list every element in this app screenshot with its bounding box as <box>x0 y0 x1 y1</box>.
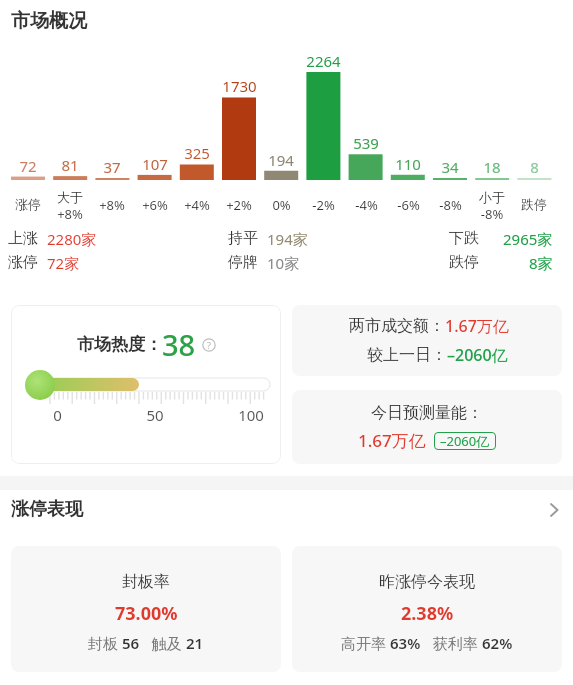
staticText: 下跌 <box>449 229 479 248</box>
staticText: 高开率 <box>341 633 390 653</box>
staticText: 1.67万亿 <box>358 429 426 452</box>
staticText: 2280家 <box>47 229 97 249</box>
staticText: 73.00% <box>115 601 178 626</box>
staticText: 72 <box>19 156 37 176</box>
staticText: 较上一日： <box>367 345 447 365</box>
staticText: 63% <box>390 633 421 653</box>
staticText: 封板 <box>88 633 122 653</box>
button[interactable]: 今日预测量能： <box>292 390 562 464</box>
staticText: 2264 <box>306 51 341 71</box>
staticText: +8% <box>99 196 125 214</box>
staticText: 1730 <box>222 76 257 96</box>
staticText: 上涨 <box>8 229 38 248</box>
staticText: 38 <box>162 325 196 364</box>
staticText: 10家 <box>267 253 300 273</box>
staticText: +2% <box>226 196 252 214</box>
staticText: 今日预测量能： <box>371 403 483 423</box>
button[interactable]: 封板率 <box>11 546 281 672</box>
staticText: 获利率 <box>421 633 482 653</box>
staticText: 触及 <box>140 633 186 653</box>
staticText: 持平 <box>228 229 258 248</box>
staticText: 18 <box>483 157 501 177</box>
staticText: 市场概况 <box>11 9 87 33</box>
staticText: –2060亿 <box>440 432 490 450</box>
staticText: 62% <box>482 633 513 653</box>
staticText: 大于 +8% <box>57 189 83 222</box>
staticText: 涨停表现 <box>11 498 83 521</box>
button[interactable]: 涨停表现 <box>11 498 562 521</box>
staticText: 194 <box>268 150 294 170</box>
staticText: 72家 <box>47 253 80 273</box>
staticText: 21 <box>186 633 204 653</box>
staticText: 110 <box>395 154 421 174</box>
staticText: 涨停 <box>8 253 38 272</box>
staticText: 停牌 <box>228 253 258 272</box>
staticText: 81 <box>61 155 79 175</box>
staticText: 100 <box>238 405 264 425</box>
staticText: 跌停 <box>449 253 479 272</box>
staticText: -6% <box>397 196 420 214</box>
staticText: 跌停 <box>521 196 547 212</box>
staticText: ? <box>207 339 211 351</box>
staticText: 194家 <box>267 229 308 249</box>
staticText: -8% <box>439 196 462 214</box>
staticText: 封板率 <box>122 572 170 592</box>
staticText: 小于 -8% <box>479 189 505 222</box>
staticText: 325 <box>184 143 210 163</box>
staticText: 8家 <box>529 253 553 273</box>
button[interactable]: 两市成交额： <box>292 305 562 376</box>
staticText: +4% <box>184 196 210 214</box>
staticText: 涨停 <box>15 196 41 212</box>
staticText: 1.67万亿 <box>445 315 509 337</box>
staticText: 8 <box>530 157 539 177</box>
staticText: 50 <box>146 405 164 425</box>
staticText: 2.38% <box>401 601 454 626</box>
staticText: 两市成交额： <box>349 316 445 336</box>
staticText: -2% <box>312 196 335 214</box>
staticText: –2060亿 <box>447 344 508 366</box>
staticText: 37 <box>103 157 121 177</box>
staticText: 34 <box>441 157 459 177</box>
staticText: 0% <box>272 196 291 214</box>
button[interactable]: 昨涨停今表现 <box>292 546 562 672</box>
staticText: 0 <box>53 405 62 425</box>
staticText: 2965家 <box>503 229 553 249</box>
staticText: -4% <box>355 196 378 214</box>
staticText: +6% <box>142 196 168 214</box>
staticText: 56 <box>122 633 140 653</box>
staticText: 107 <box>142 154 168 174</box>
staticText: 市场热度： <box>77 334 162 355</box>
staticText: 昨涨停今表现 <box>379 572 475 592</box>
button[interactable]: 市场热度： <box>11 305 281 464</box>
staticText: 539 <box>353 133 379 153</box>
